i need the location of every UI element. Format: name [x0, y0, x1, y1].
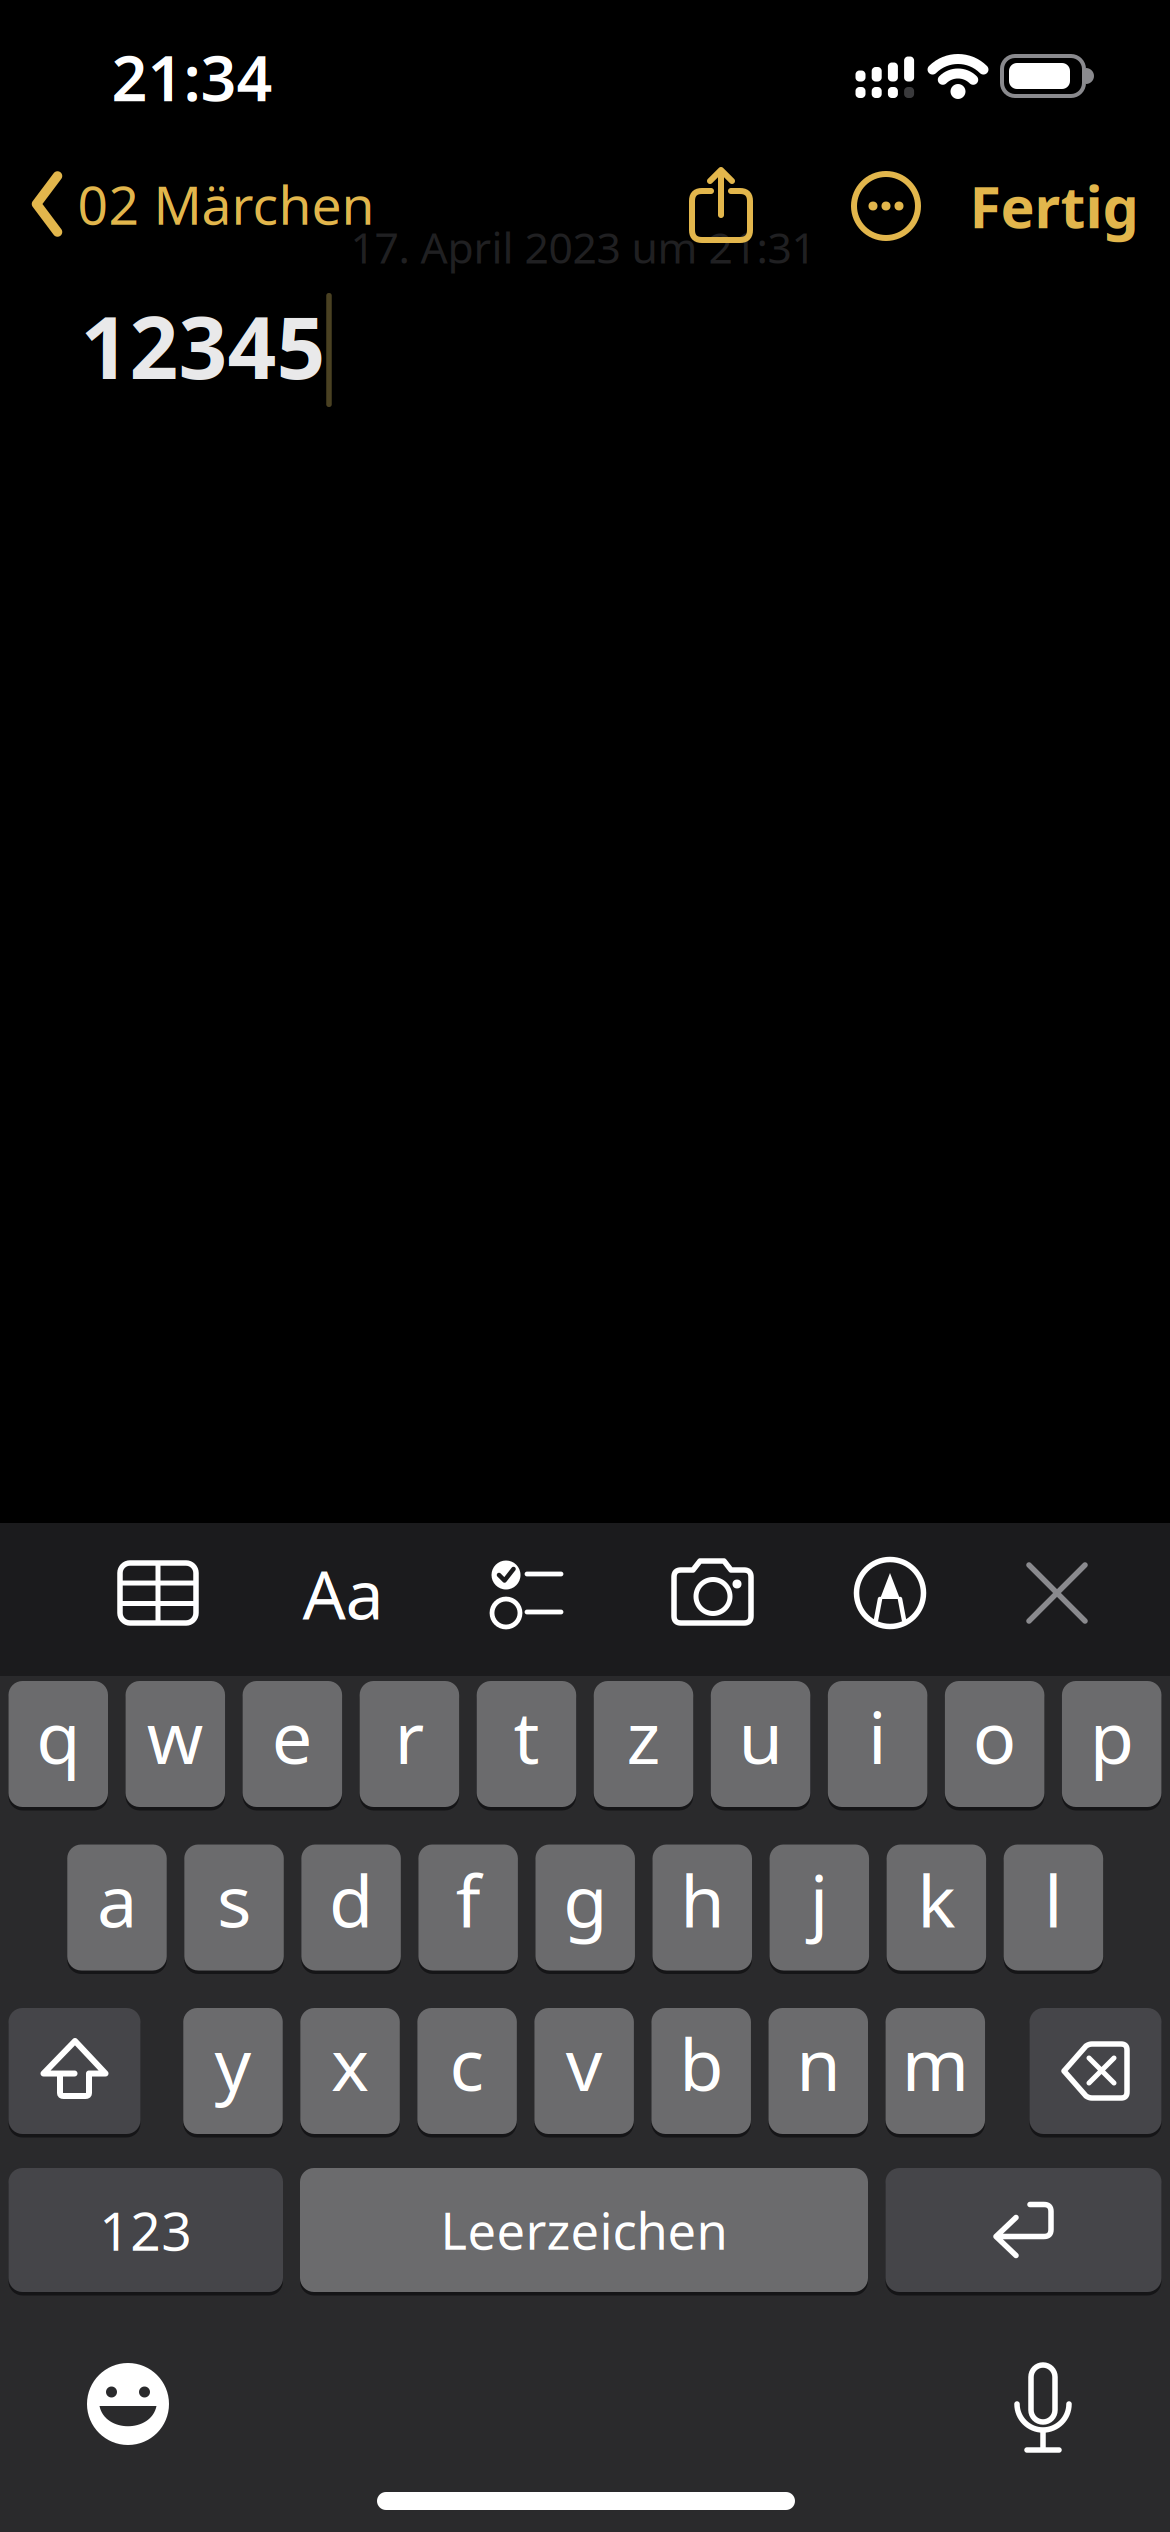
- staticText: c: [450, 2015, 485, 2111]
- staticText: z: [626, 1688, 660, 1784]
- button[interactable]: c: [417, 2008, 517, 2134]
- staticText: d: [329, 1852, 373, 1947]
- staticText: 12345: [80, 289, 325, 403]
- button[interactable]: v: [534, 2008, 634, 2134]
- staticText: o: [973, 1688, 1017, 1784]
- staticText: k: [917, 1852, 955, 1947]
- button[interactable]: k: [887, 1844, 986, 1970]
- button[interactable]: q: [8, 1681, 108, 1807]
- staticText: b: [679, 2015, 723, 2111]
- staticText: f: [456, 1852, 481, 1947]
- staticText: l: [1044, 1852, 1063, 1947]
- staticText: u: [738, 1688, 782, 1784]
- staticText: q: [36, 1688, 80, 1784]
- staticText: a: [97, 1852, 137, 1947]
- button[interactable]: i: [828, 1681, 927, 1807]
- staticText: j: [810, 1852, 829, 1947]
- button[interactable]: Markierung: [852, 1555, 928, 1631]
- staticText: p: [1090, 1688, 1134, 1784]
- button[interactable]: j: [769, 1844, 869, 1970]
- staticText: 02 Märchen: [77, 169, 374, 239]
- button[interactable]: Umschalttaste: [8, 2008, 140, 2134]
- button[interactable]: Checkliste: [489, 1561, 565, 1627]
- staticText: r: [394, 1688, 424, 1784]
- button[interactable]: Zeilenumbruch: [885, 2168, 1161, 2292]
- button[interactable]: Teilen: [689, 164, 753, 244]
- button[interactable]: a: [67, 1844, 167, 1970]
- button[interactable]: p: [1062, 1681, 1161, 1807]
- button[interactable]: 02 Märchen: [31, 169, 374, 239]
- button[interactable]: e: [243, 1681, 342, 1807]
- staticText: 21:34: [111, 35, 272, 119]
- staticText: x: [331, 2015, 369, 2111]
- staticText: 123: [99, 2195, 192, 2265]
- button[interactable]: Kamera: [671, 1560, 755, 1630]
- button[interactable]: Emoji: [87, 2363, 169, 2445]
- button[interactable]: Formatierung: [302, 1548, 383, 1638]
- button[interactable]: r: [360, 1681, 459, 1807]
- staticText: i: [868, 1688, 887, 1784]
- staticText: h: [680, 1852, 724, 1947]
- staticText: t: [513, 1688, 539, 1784]
- button[interactable]: l: [1004, 1844, 1103, 1970]
- staticText: m: [902, 2015, 969, 2111]
- button[interactable]: Fertig: [969, 168, 1138, 244]
- button[interactable]: Leerzeichen: [300, 2168, 868, 2292]
- staticText: s: [217, 1852, 251, 1947]
- staticText: e: [272, 1688, 313, 1784]
- button[interactable]: w: [126, 1681, 225, 1807]
- staticText: g: [563, 1852, 607, 1947]
- staticText: n: [796, 2015, 840, 2111]
- staticText: v: [566, 2015, 603, 2111]
- button[interactable]: h: [652, 1844, 752, 1970]
- staticText: Fertig: [969, 168, 1138, 244]
- button[interactable]: o: [945, 1681, 1044, 1807]
- button[interactable]: y: [183, 2008, 283, 2134]
- button[interactable]: Mehr: [854, 174, 918, 238]
- button[interactable]: 123: [8, 2168, 283, 2292]
- button[interactable]: x: [300, 2008, 400, 2134]
- button[interactable]: f: [418, 1844, 518, 1970]
- button[interactable]: t: [477, 1681, 576, 1807]
- button[interactable]: Löschen: [1029, 2008, 1161, 2134]
- button[interactable]: u: [711, 1681, 810, 1807]
- button[interactable]: s: [184, 1844, 284, 1970]
- staticText: y: [214, 2015, 251, 2111]
- staticText: 17. April 2023 um 21:31: [350, 219, 815, 275]
- button[interactable]: b: [651, 2008, 751, 2134]
- button[interactable]: Diktieren: [1008, 2358, 1078, 2458]
- button[interactable]: Tabelle: [117, 1560, 199, 1626]
- button[interactable]: m: [885, 2008, 985, 2134]
- staticText: Aa: [302, 1548, 383, 1638]
- button[interactable]: z: [594, 1681, 693, 1807]
- button[interactable]: g: [535, 1844, 635, 1970]
- staticText: w: [147, 1688, 204, 1784]
- staticText: Leerzeichen: [440, 2196, 727, 2264]
- button[interactable]: d: [301, 1844, 401, 1970]
- button[interactable]: n: [768, 2008, 868, 2134]
- button[interactable]: Tastatur ausblenden: [1029, 1565, 1085, 1621]
